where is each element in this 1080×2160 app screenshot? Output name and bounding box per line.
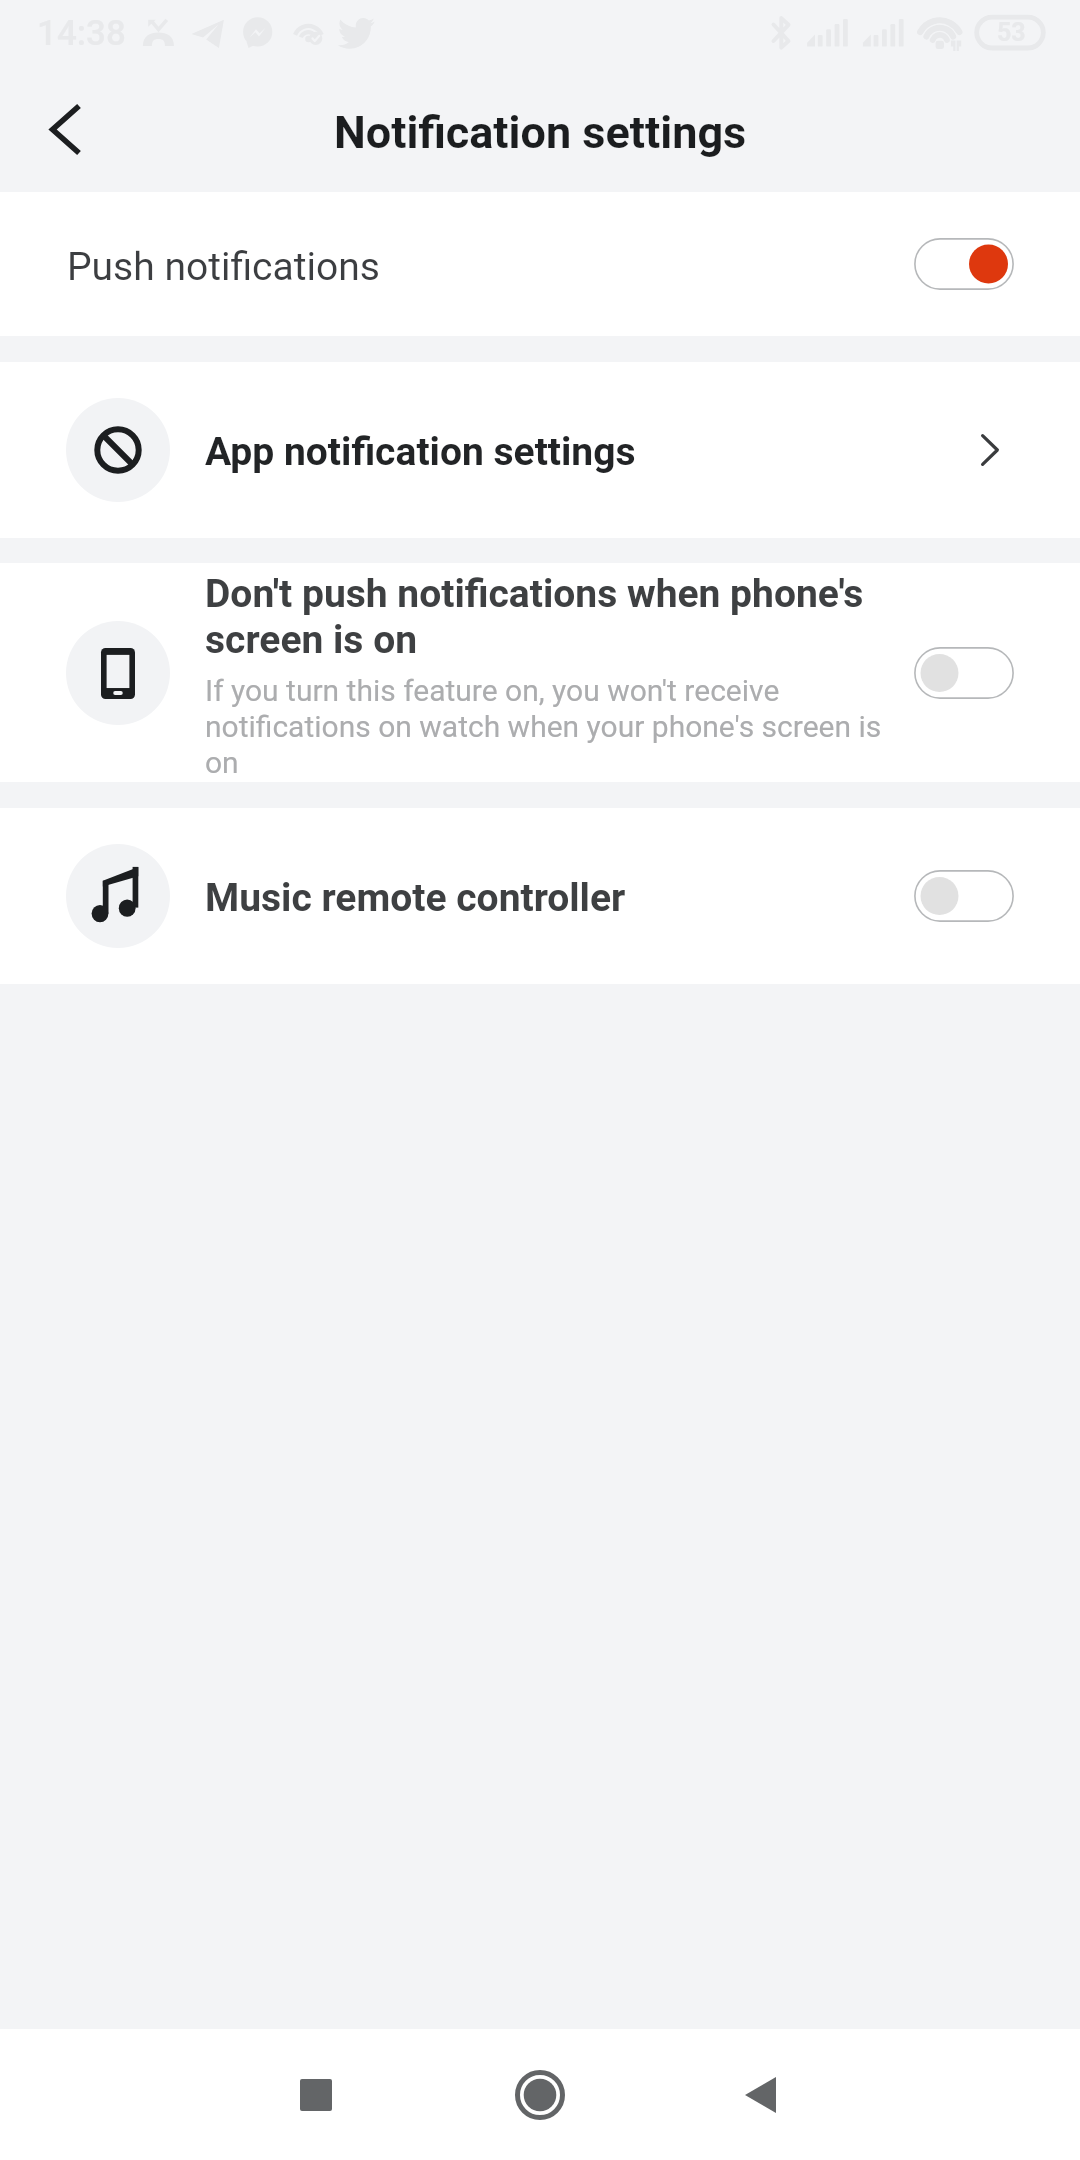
staticText: 14:38	[37, 13, 126, 54]
staticText: Music remote controller	[205, 875, 626, 921]
staticText: Don't push notifications when phone's sc…	[205, 571, 905, 663]
staticText: If you turn this feature on, you won't r…	[205, 672, 905, 780]
button[interactable]: Don't push notifications when phone's sc…	[914, 647, 1014, 699]
button[interactable]: Recent apps	[256, 2035, 376, 2155]
button[interactable]: Music remote controller	[914, 870, 1014, 922]
button[interactable]: Back	[700, 2035, 820, 2155]
staticText: Push notifications	[67, 244, 380, 290]
button[interactable]: App notification settings	[0, 362, 1080, 538]
staticText: Notification settings	[334, 106, 747, 159]
button[interactable]: Don't push notifications when phone's sc…	[0, 563, 1080, 782]
button[interactable]: Push notifications	[0, 192, 1080, 336]
staticText: 53	[997, 18, 1026, 47]
button[interactable]: Home	[480, 2035, 600, 2155]
button[interactable]: Push notifications	[914, 238, 1014, 290]
button[interactable]: Music remote controller	[0, 808, 1080, 984]
staticText: App notification settings	[205, 429, 636, 475]
button[interactable]: Back	[0, 72, 118, 192]
